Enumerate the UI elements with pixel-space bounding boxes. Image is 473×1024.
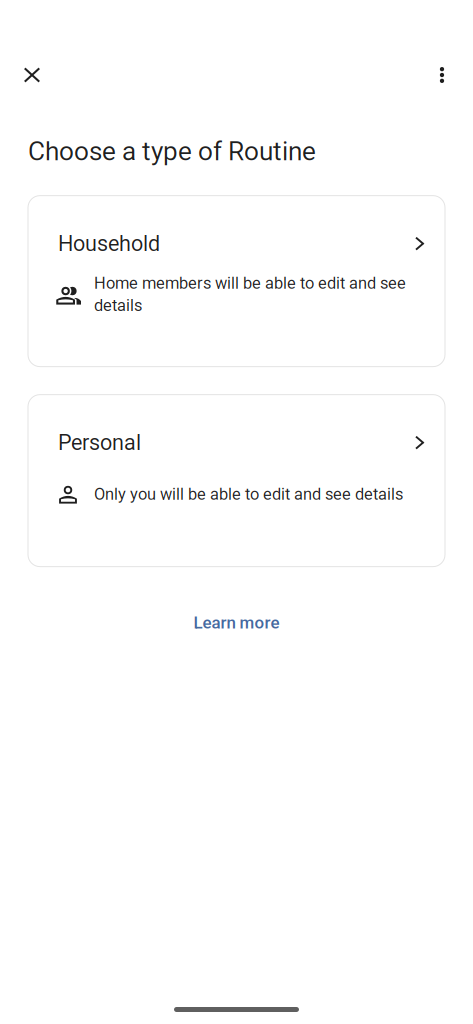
button[interactable]: More options <box>418 51 466 99</box>
staticText: Only you will be able to edit and see de… <box>94 485 403 504</box>
staticText: Household <box>58 231 160 256</box>
button[interactable]: Close <box>8 51 56 99</box>
staticText: Home members will be able to edit and se… <box>94 274 406 315</box>
button[interactable]: Personal <box>28 395 445 567</box>
button[interactable]: Household <box>28 196 445 367</box>
button[interactable]: Learn more <box>28 606 445 640</box>
staticText: Learn more <box>193 613 279 632</box>
staticText: Choose a type of Routine <box>28 136 316 167</box>
staticText: Personal <box>58 430 141 455</box>
